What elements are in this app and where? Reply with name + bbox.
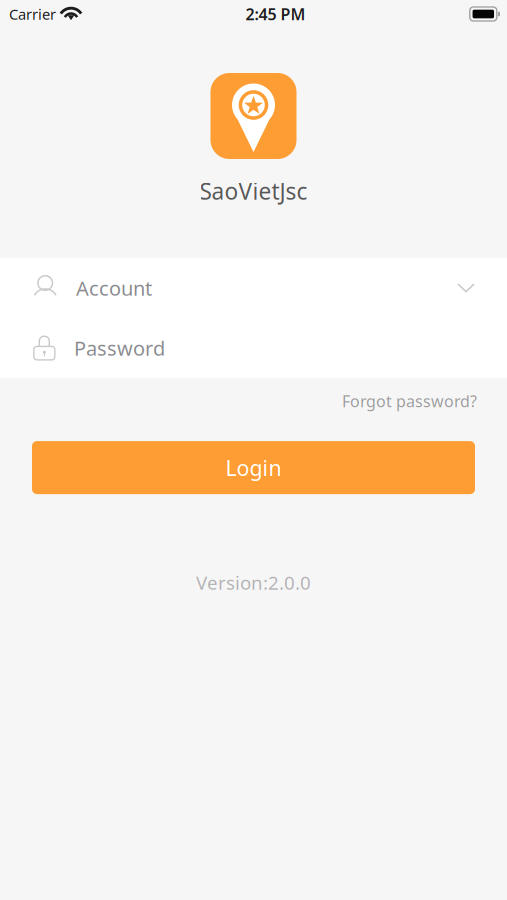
button[interactable]: Login	[0, 441, 507, 494]
button[interactable]: Forgot password?	[0, 387, 507, 415]
staticText: Forgot password?	[342, 390, 477, 412]
button[interactable]: Show saved accounts	[443, 258, 507, 318]
button[interactable]: Account	[0, 258, 507, 318]
staticText: SaoVietJsc	[199, 176, 307, 206]
staticText: Carrier	[9, 4, 56, 24]
staticText: Login	[225, 453, 281, 482]
staticText: 2:45 PM	[245, 3, 305, 25]
button[interactable]: Password	[0, 318, 507, 378]
staticText: Password	[74, 335, 165, 361]
staticText: Account	[76, 275, 152, 301]
staticText: Version:2.0.0	[196, 570, 311, 595]
